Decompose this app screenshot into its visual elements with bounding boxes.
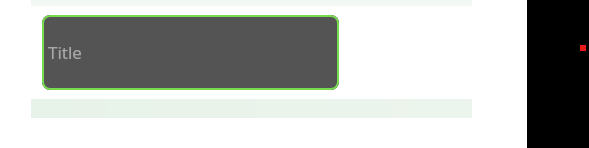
- staticText: Title: [48, 41, 82, 64]
- button[interactable]: Title: [42, 15, 339, 90]
- other: Panel: [527, 0, 589, 148]
